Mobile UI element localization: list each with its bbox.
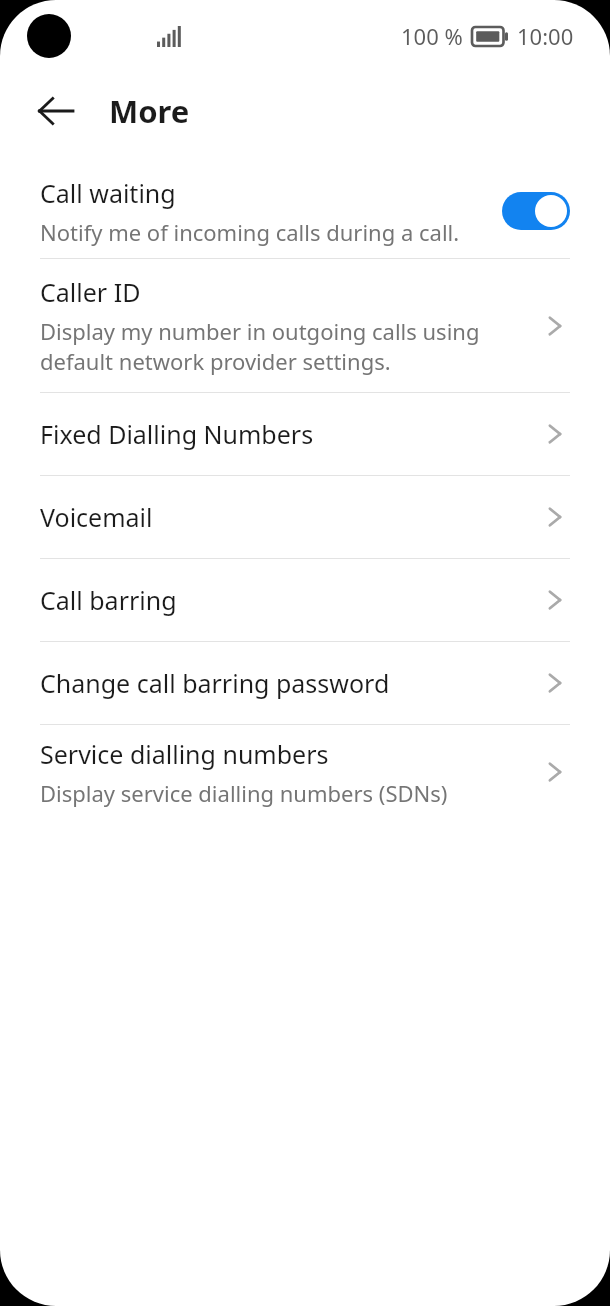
staticText: Voicemail — [40, 500, 153, 534]
button[interactable]: Call waiting — [0, 164, 610, 258]
staticText: Display service dialling numbers (SDNs) — [40, 778, 448, 808]
staticText: Service dialling numbers — [40, 737, 329, 771]
button[interactable]: Change call barring password — [0, 642, 610, 724]
button[interactable]: Call waiting, on — [502, 192, 570, 230]
staticText: Change call barring password — [40, 666, 390, 700]
button[interactable]: Service dialling numbers — [0, 725, 610, 819]
staticText: Call barring — [40, 583, 177, 617]
staticText: 10:00 — [517, 21, 574, 51]
button[interactable]: Fixed Dialling Numbers — [0, 393, 610, 475]
button[interactable]: Back — [26, 82, 84, 140]
button[interactable]: Caller ID — [0, 259, 610, 392]
staticText: Caller ID — [40, 275, 141, 309]
staticText: 100 % — [401, 21, 463, 51]
staticText: Notify me of incoming calls during a cal… — [40, 217, 460, 247]
button[interactable]: Voicemail — [0, 476, 610, 558]
staticText: Display my number in outgoing calls usin… — [40, 316, 480, 376]
staticText: Call waiting — [40, 176, 176, 210]
staticText: Fixed Dialling Numbers — [40, 417, 314, 451]
button[interactable]: Call barring — [0, 559, 610, 641]
staticText: More — [109, 90, 190, 132]
